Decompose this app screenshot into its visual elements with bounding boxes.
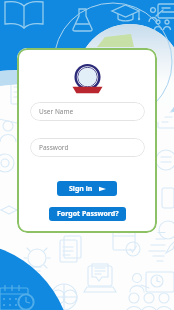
staticText: User Name bbox=[39, 107, 74, 116]
button[interactable]: Sign in bbox=[57, 181, 117, 196]
staticText: Password bbox=[39, 143, 69, 152]
button[interactable]: Password bbox=[30, 138, 145, 157]
staticText: Forgot Password? bbox=[57, 209, 119, 219]
staticText: Sign in bbox=[69, 184, 93, 194]
button[interactable]: User Name bbox=[30, 102, 145, 121]
button[interactable]: Forgot Password? bbox=[49, 207, 126, 221]
